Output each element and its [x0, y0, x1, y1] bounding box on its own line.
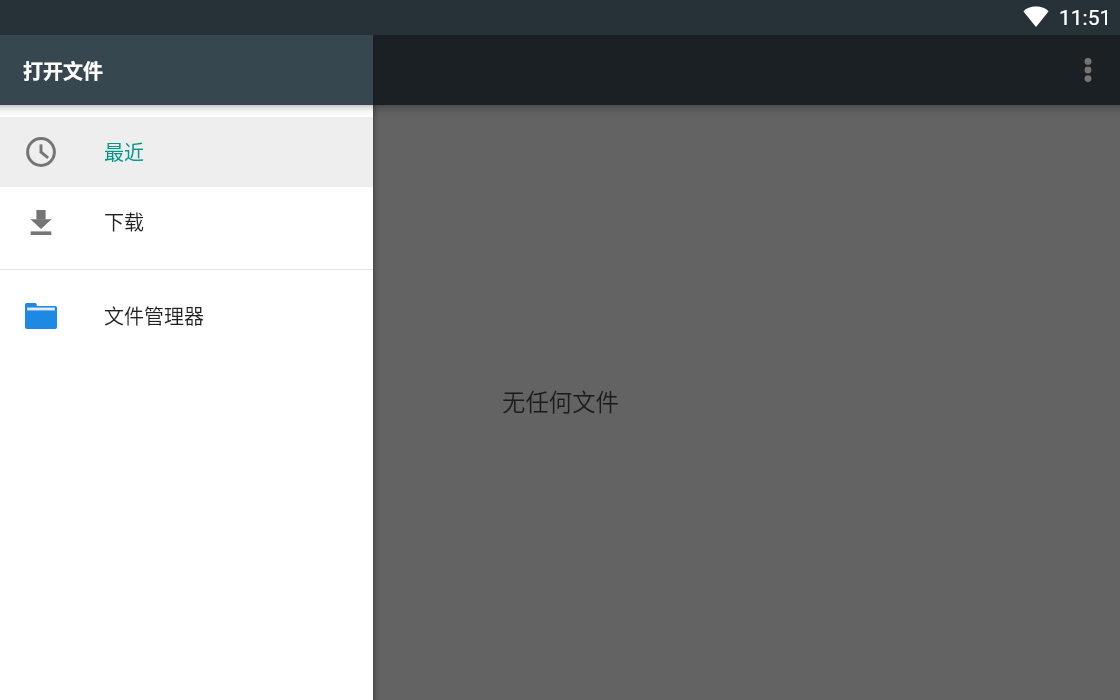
button[interactable]: 下载	[0, 187, 373, 257]
button[interactable]: More options	[1064, 46, 1112, 94]
staticText: 下载	[104, 207, 144, 236]
staticText: 无任何文件	[502, 384, 619, 418]
staticText: 11:51	[1059, 6, 1112, 31]
staticText: 文件管理器	[104, 301, 204, 330]
staticText: 最近	[104, 137, 144, 166]
staticText: 打开文件	[23, 56, 103, 85]
button[interactable]: 最近	[0, 117, 373, 187]
button[interactable]: 无任何文件	[0, 0, 1120, 700]
button[interactable]: 文件管理器	[0, 281, 373, 351]
button[interactable]: 打开文件	[0, 35, 373, 105]
